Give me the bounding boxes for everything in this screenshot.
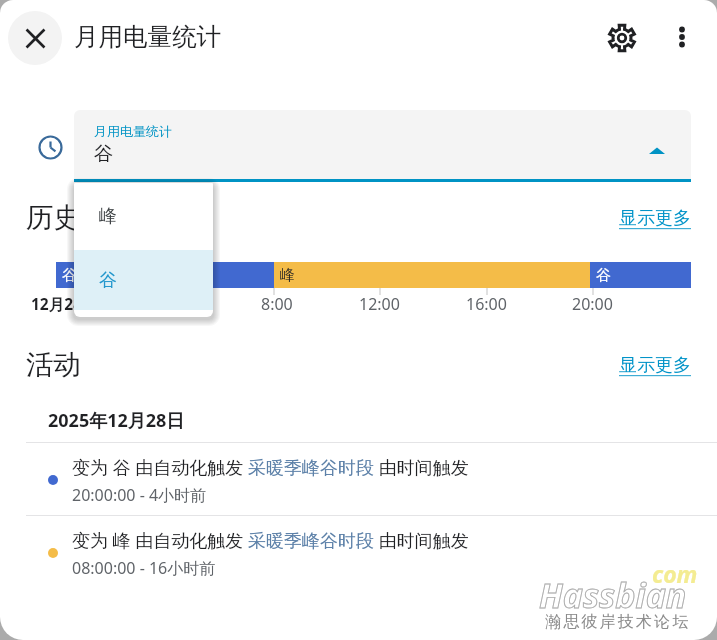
button[interactable]: 变为 峰 由自动化触发 采暖季峰谷时段 由时间触发 xyxy=(26,520,691,592)
staticText: 谷 xyxy=(62,266,77,285)
staticText: 8:00 xyxy=(261,293,293,315)
staticText: 谷 xyxy=(99,269,117,292)
button[interactable]: Settings xyxy=(600,16,644,60)
staticText: 2025年12月28日 xyxy=(48,408,185,433)
button[interactable]: 显示更多 xyxy=(611,346,699,385)
staticText: 月用电量统计 xyxy=(74,21,221,52)
staticText: 峰 xyxy=(99,205,117,228)
staticText: 月用电量统计 xyxy=(94,123,172,139)
staticText: 变为 谷 由自动化触发 采暖季峰谷时段 由时间触发 xyxy=(72,455,469,480)
staticText: 谷 xyxy=(94,141,114,166)
staticText: 12月28日 xyxy=(31,293,98,314)
staticText: com xyxy=(652,558,698,589)
staticText: 16:00 xyxy=(466,293,507,315)
button[interactable]: 变为 谷 由自动化触发 采暖季峰谷时段 由时间触发 xyxy=(26,447,691,519)
button[interactable]: 峰 xyxy=(74,183,213,250)
staticText: 显示更多 xyxy=(619,207,691,230)
staticText: 显示更多 xyxy=(619,354,691,377)
button[interactable]: More options xyxy=(660,15,704,59)
button[interactable]: Close xyxy=(8,11,62,65)
staticText: 变为 峰 由自动化触发 采暖季峰谷时段 由时间触发 xyxy=(72,528,469,553)
staticText: 瀚思彼岸技术论坛 xyxy=(545,612,691,632)
staticText: 12:00 xyxy=(359,293,400,315)
staticText: 谷 xyxy=(596,266,611,285)
staticText: Hassbian xyxy=(539,572,687,618)
button[interactable]: 谷 xyxy=(74,250,213,310)
staticText: 20:00 xyxy=(572,293,613,315)
button[interactable]: 显示更多 xyxy=(611,199,699,238)
button[interactable]: 月用电量统计 xyxy=(74,110,691,182)
staticText: 历史 xyxy=(26,201,81,236)
staticText: 活动 xyxy=(26,348,81,383)
staticText: 峰 xyxy=(280,266,295,285)
staticText: 20:00:00 - 4小时前 xyxy=(72,484,207,506)
staticText: 08:00:00 - 16小时前 xyxy=(72,557,216,579)
